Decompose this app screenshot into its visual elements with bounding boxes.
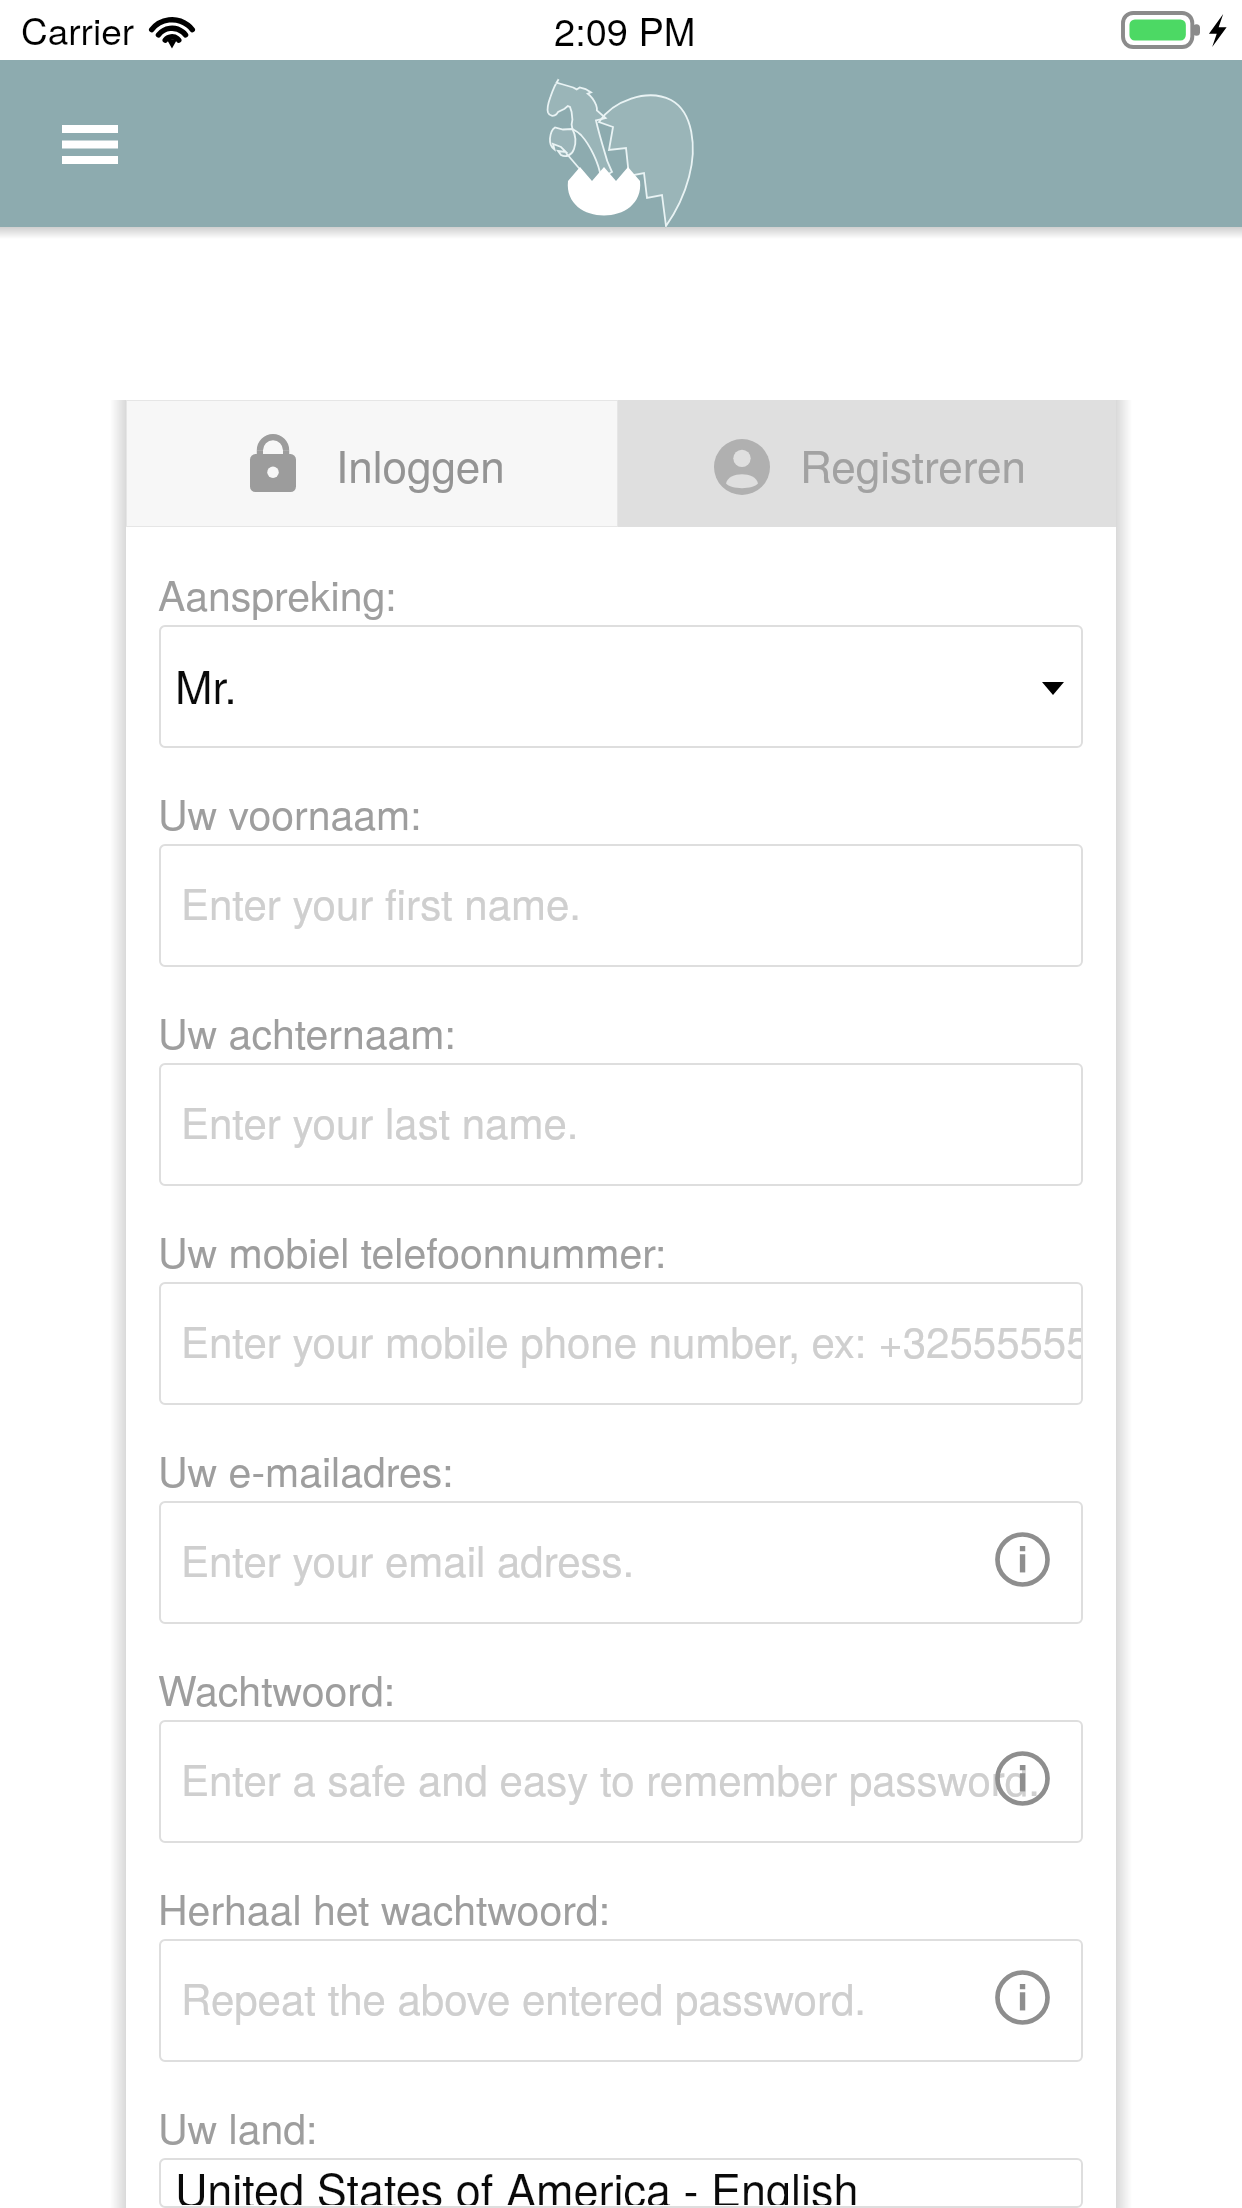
button[interactable]: Mr.	[159, 625, 1083, 748]
staticText: Registreren	[800, 432, 1026, 495]
staticText: United States of America - English	[175, 2158, 859, 2205]
staticText: Mr.	[175, 652, 237, 716]
button[interactable]: Inloggen	[126, 400, 618, 527]
staticText: Wachtwoord:	[158, 1659, 396, 1718]
staticText: Enter your first name.	[181, 872, 582, 932]
button[interactable]: Registreren	[618, 400, 1116, 527]
staticText: 2:09 PM	[554, 2, 696, 56]
button[interactable]: Enter your email adress.	[159, 1501, 1083, 1624]
staticText: Uw mobiel telefoonnummer:	[158, 1221, 667, 1280]
staticText: Enter your last name.	[181, 1091, 579, 1151]
staticText: Aanspreking:	[158, 564, 397, 623]
staticText: Enter a safe and easy to remember passwo…	[181, 1748, 1040, 1808]
button[interactable]: Menu	[50, 104, 130, 184]
staticText: Uw e-mailadres:	[158, 1440, 454, 1499]
staticText: Repeat the above entered password.	[181, 1967, 866, 2027]
staticText: Inloggen	[336, 432, 505, 495]
button[interactable]: Enter a safe and easy to remember passwo…	[159, 1720, 1083, 1843]
staticText: Uw voornaam:	[158, 783, 422, 842]
button[interactable]: Enter your last name.	[159, 1063, 1083, 1186]
staticText: Herhaal het wachtwoord:	[158, 1878, 611, 1937]
staticText: Enter your mobile phone number, ex: +325…	[181, 1310, 1083, 1370]
staticText: Enter your email adress.	[181, 1529, 635, 1589]
button[interactable]: United States of America - English	[159, 2158, 1083, 2208]
staticText: Carrier	[21, 3, 135, 56]
button[interactable]: Enter your mobile phone number, ex: +325…	[159, 1282, 1083, 1405]
staticText: Uw achternaam:	[158, 1002, 456, 1061]
staticText: Uw land:	[158, 2097, 318, 2156]
button[interactable]: Enter your first name.	[159, 844, 1083, 967]
button[interactable]: Repeat the above entered password.	[159, 1939, 1083, 2062]
